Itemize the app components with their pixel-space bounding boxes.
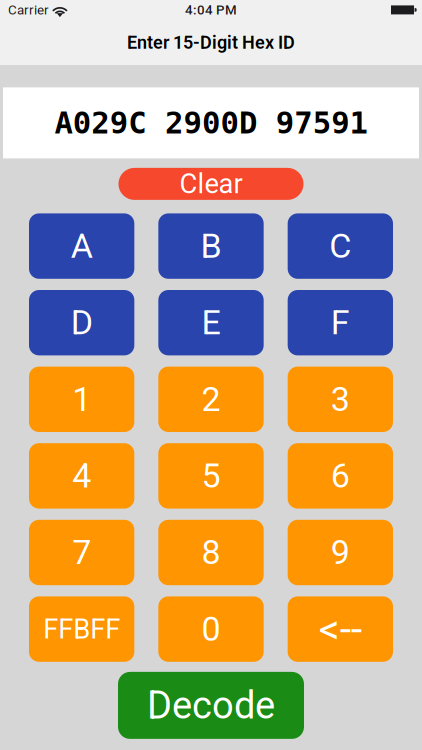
staticText: 6 bbox=[331, 456, 350, 496]
button[interactable]: D bbox=[29, 290, 134, 355]
staticText: D bbox=[71, 303, 93, 343]
staticText: Carrier bbox=[8, 2, 49, 18]
button[interactable]: 1 bbox=[29, 367, 134, 432]
staticText: 1 bbox=[72, 379, 91, 419]
staticText: Decode bbox=[147, 683, 275, 728]
button[interactable]: 8 bbox=[158, 520, 264, 585]
button[interactable]: 7 bbox=[29, 520, 134, 585]
button[interactable]: FFBFF bbox=[29, 596, 134, 662]
button[interactable]: E bbox=[158, 290, 264, 355]
staticText: <-- bbox=[319, 605, 362, 653]
staticText: 9 bbox=[331, 533, 350, 572]
staticText: B bbox=[200, 226, 221, 266]
staticText: Clear bbox=[179, 168, 242, 200]
staticText: 3 bbox=[331, 379, 350, 419]
button[interactable]: <-- bbox=[288, 596, 393, 662]
staticText: A bbox=[71, 226, 93, 266]
button[interactable]: 6 bbox=[288, 443, 393, 509]
button[interactable]: 3 bbox=[288, 367, 393, 432]
staticText: A029C 2900D 97591 bbox=[54, 105, 368, 141]
button[interactable]: 0 bbox=[158, 596, 264, 662]
staticText: 4 bbox=[72, 456, 91, 496]
staticText: FFBFF bbox=[43, 613, 120, 645]
button[interactable]: 4 bbox=[29, 443, 134, 509]
button[interactable]: Decode bbox=[118, 672, 304, 739]
button[interactable]: A bbox=[29, 213, 134, 279]
staticText: 0 bbox=[201, 609, 220, 649]
button[interactable]: C bbox=[288, 213, 393, 279]
staticText: 5 bbox=[201, 456, 220, 496]
staticText: 2 bbox=[201, 379, 220, 419]
button[interactable]: B bbox=[158, 213, 264, 279]
button[interactable]: Clear bbox=[118, 168, 303, 200]
button[interactable]: F bbox=[288, 290, 393, 355]
button[interactable]: 5 bbox=[158, 443, 264, 509]
staticText: 7 bbox=[72, 533, 91, 572]
staticText: C bbox=[329, 226, 351, 266]
staticText: E bbox=[201, 303, 220, 343]
button[interactable]: 2 bbox=[158, 367, 264, 432]
staticText: 4:04 PM bbox=[185, 2, 237, 18]
staticText: Enter 15-Digit Hex ID bbox=[127, 32, 295, 53]
staticText: 8 bbox=[201, 533, 220, 572]
staticText: F bbox=[331, 303, 350, 343]
button[interactable]: 9 bbox=[288, 520, 393, 585]
